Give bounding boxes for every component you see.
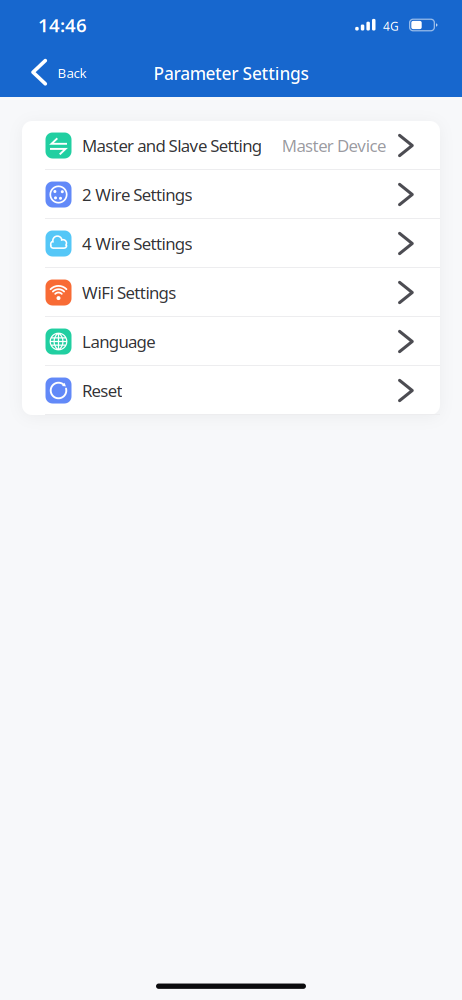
button[interactable]: 2 Wire Settings bbox=[22, 170, 440, 219]
staticText: 2 Wire Settings bbox=[82, 183, 192, 206]
button[interactable]: Language bbox=[22, 317, 440, 366]
button[interactable]: 4 Wire Settings bbox=[22, 219, 440, 268]
staticText: Parameter Settings bbox=[153, 62, 309, 85]
button[interactable]: WiFi Settings bbox=[22, 268, 440, 317]
staticText: Master and Slave Setting bbox=[82, 134, 262, 157]
staticText: 4 Wire Settings bbox=[82, 232, 192, 255]
staticText: Language bbox=[82, 330, 155, 353]
staticText: WiFi Settings bbox=[82, 281, 176, 304]
staticText: Back bbox=[57, 64, 86, 82]
staticText: 14:46 bbox=[38, 13, 87, 37]
button[interactable]: Master and Slave Setting bbox=[22, 121, 440, 170]
button[interactable]: Back bbox=[0, 48, 100, 97]
staticText: Reset bbox=[82, 379, 122, 402]
staticText: 4G bbox=[383, 18, 399, 34]
button[interactable]: Reset bbox=[22, 366, 440, 415]
staticText: Master Device bbox=[282, 134, 386, 157]
